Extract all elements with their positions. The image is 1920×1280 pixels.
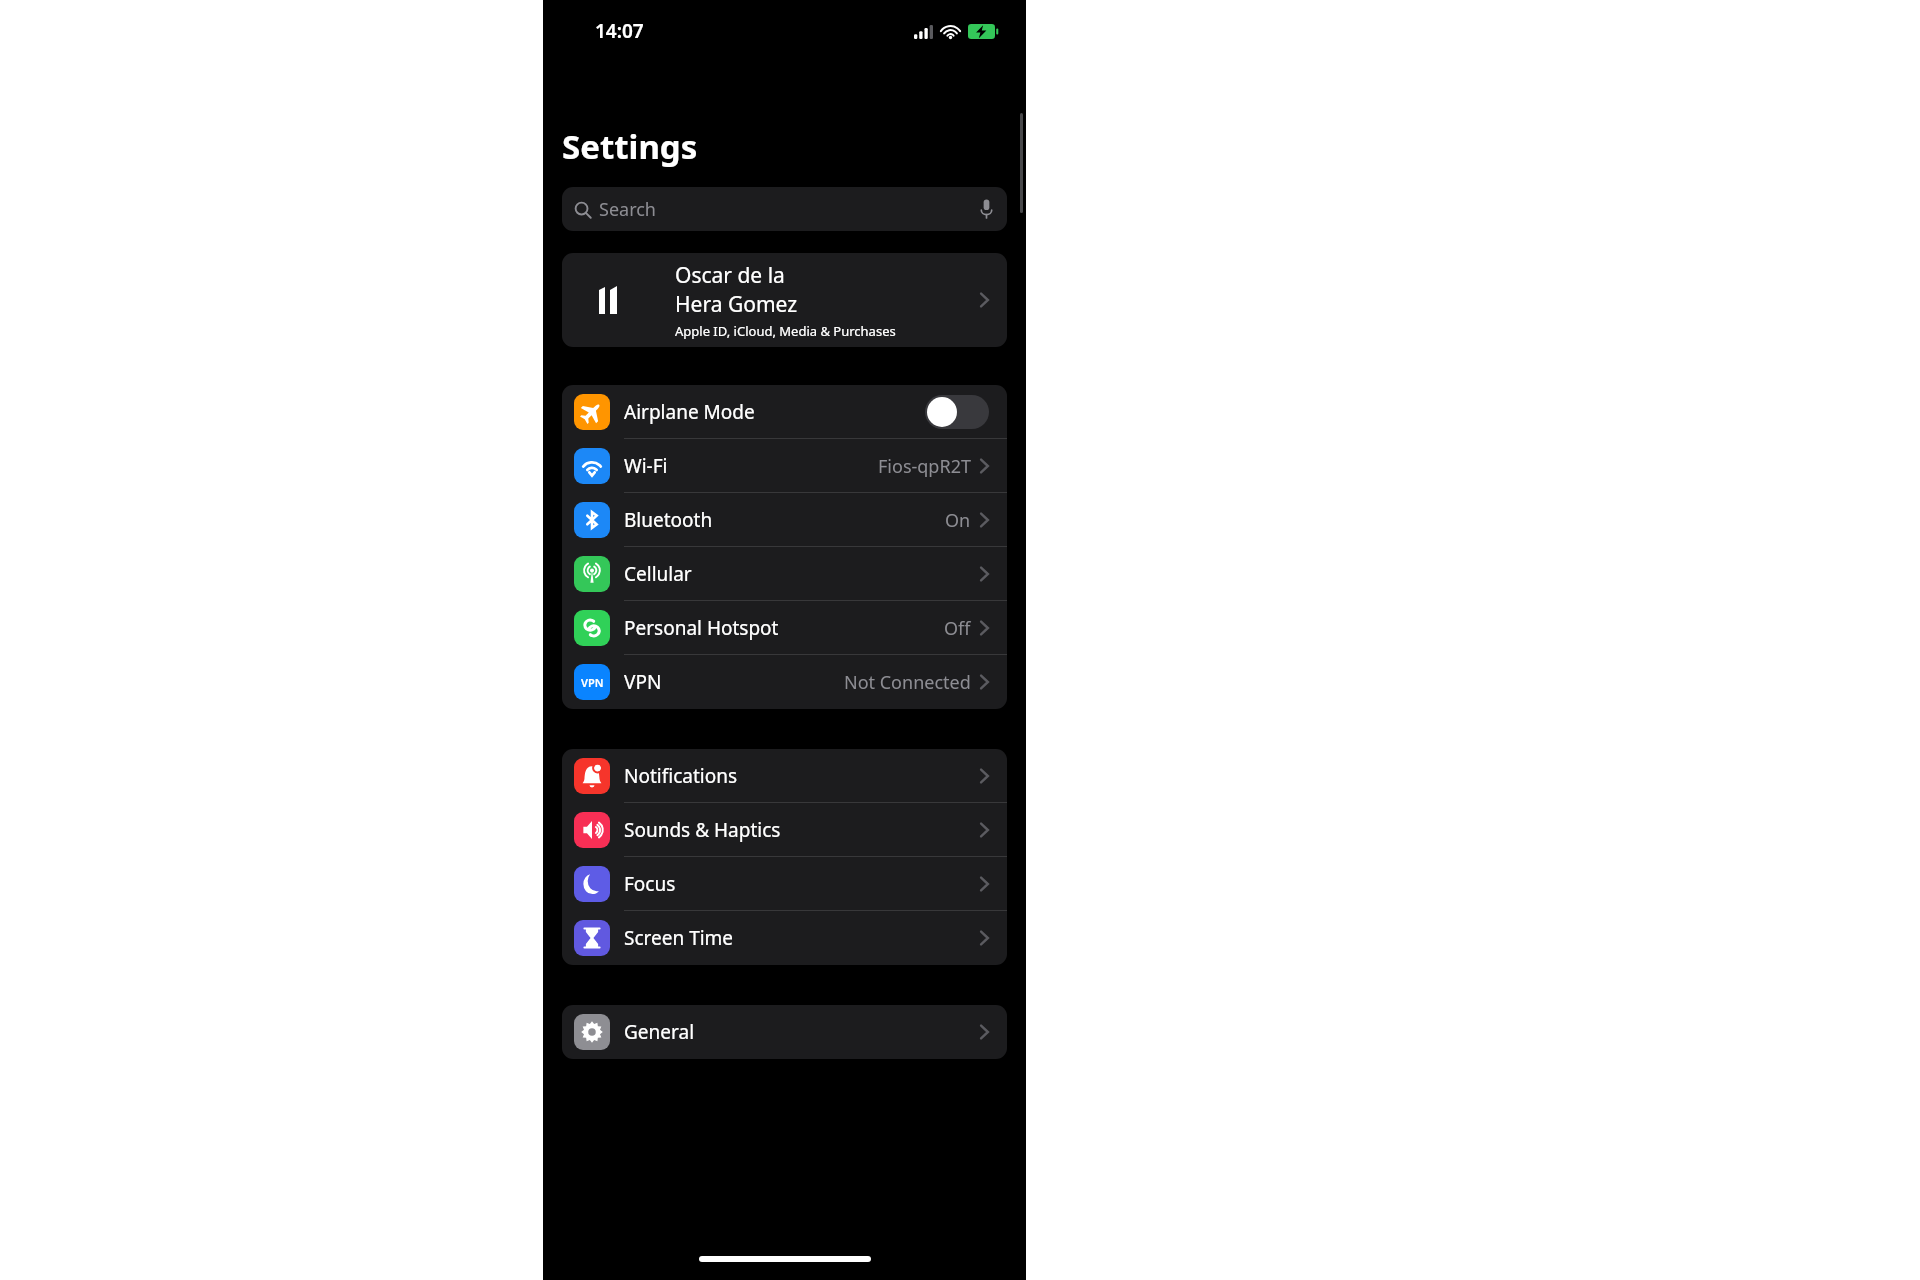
button[interactable]: Cellular	[562, 547, 1007, 601]
button[interactable]: VPN	[562, 655, 1007, 709]
button[interactable]: Notifications	[562, 749, 1007, 803]
button[interactable]: Focus	[562, 857, 1007, 911]
staticText: VPN	[581, 675, 604, 690]
staticText: 14:07	[595, 18, 644, 44]
staticText: Hera Gomez	[675, 290, 798, 319]
staticText: Off	[944, 616, 971, 641]
staticText: Focus	[624, 871, 676, 897]
button[interactable]: Oscar de la	[562, 253, 1007, 347]
staticText: Apple ID, iCloud, Media & Purchases	[675, 322, 896, 340]
button[interactable]: Screen Time	[562, 911, 1007, 965]
staticText: Not Connected	[844, 670, 971, 695]
button[interactable]	[925, 395, 989, 429]
button[interactable]: Sounds & Haptics	[562, 803, 1007, 857]
button[interactable]: Airplane Mode	[562, 385, 1007, 439]
staticText: Notifications	[624, 763, 738, 789]
staticText: Cellular	[624, 561, 692, 587]
staticText: Oscar de la	[675, 261, 785, 290]
staticText: Sounds & Haptics	[624, 817, 781, 843]
staticText: Settings	[562, 124, 698, 169]
staticText: On	[945, 508, 971, 533]
button[interactable]: Bluetooth	[562, 493, 1007, 547]
button[interactable]: Wi-Fi	[562, 439, 1007, 493]
staticText: Fios-qpR2T	[878, 454, 971, 479]
button[interactable]: Personal Hotspot	[562, 601, 1007, 655]
button[interactable]: General	[562, 1005, 1007, 1059]
staticText: Search	[599, 197, 656, 222]
staticText: Airplane Mode	[624, 399, 755, 425]
staticText: Bluetooth	[624, 507, 713, 533]
staticText: General	[624, 1019, 695, 1045]
staticText: VPN	[624, 669, 662, 695]
button[interactable]: Search	[562, 187, 1007, 231]
staticText: Personal Hotspot	[624, 615, 779, 641]
staticText: Wi-Fi	[624, 453, 668, 479]
staticText: Screen Time	[624, 925, 734, 951]
